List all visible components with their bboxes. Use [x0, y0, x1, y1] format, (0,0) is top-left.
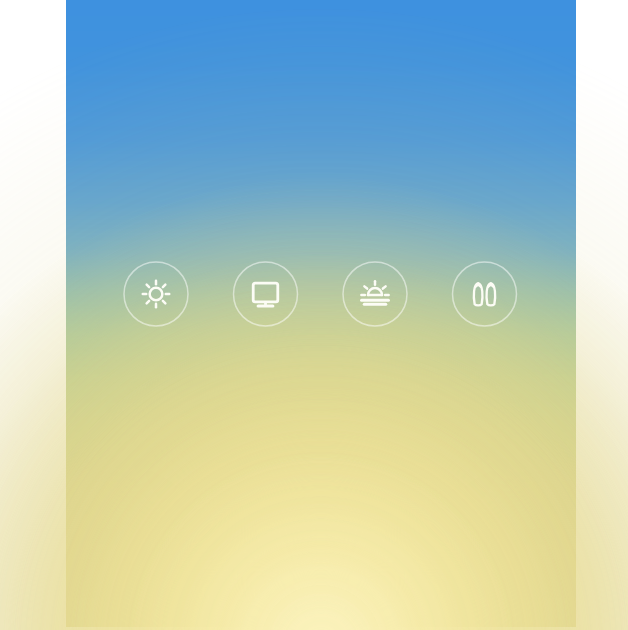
button[interactable]: Brightness — [124, 262, 188, 326]
button[interactable]: Display — [234, 262, 298, 326]
button[interactable]: Beach mode — [453, 262, 517, 326]
button[interactable]: Sunrise — [343, 262, 407, 326]
